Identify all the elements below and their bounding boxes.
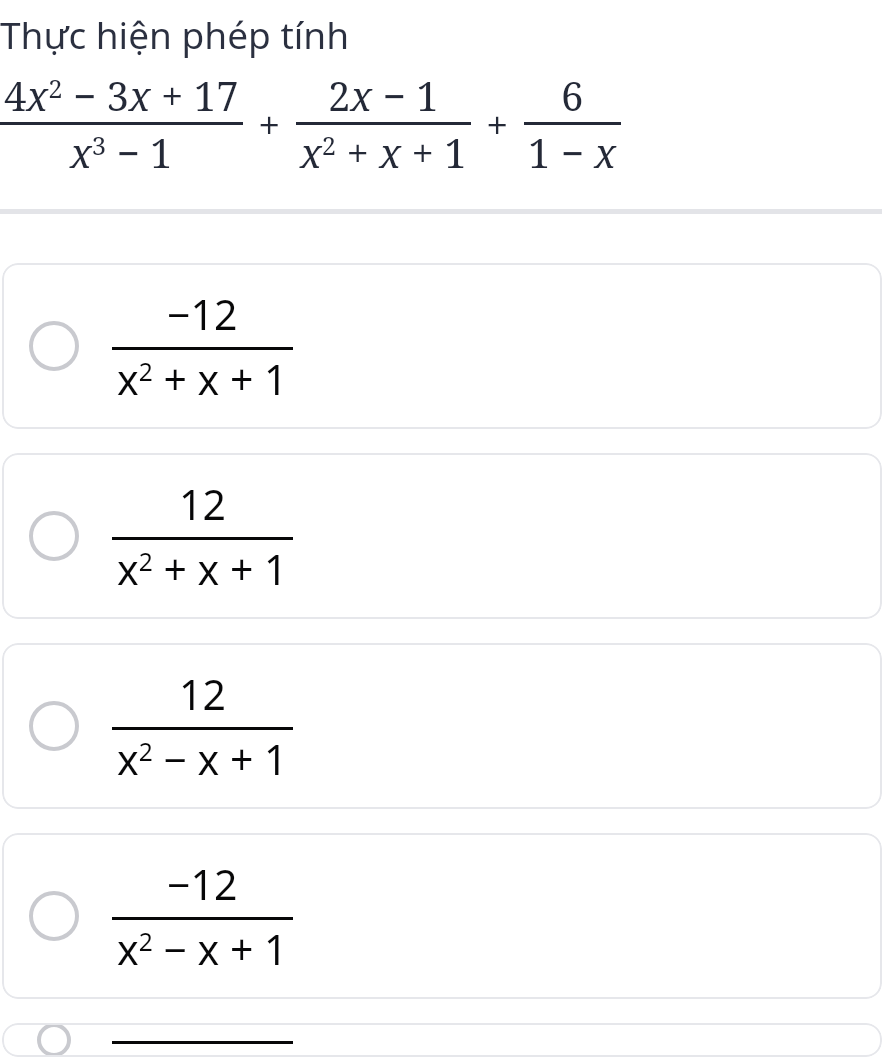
staticText: x2 − x + 1 bbox=[117, 921, 288, 977]
staticText: −12 bbox=[167, 286, 238, 342]
staticText: x2 + x + 1 bbox=[117, 1045, 288, 1057]
staticText: + bbox=[486, 97, 509, 151]
other: Select this answer bbox=[29, 321, 79, 371]
staticText: 12 bbox=[179, 1023, 226, 1036]
staticText: −12 bbox=[167, 856, 238, 912]
staticText: + bbox=[258, 97, 281, 151]
other: Select this answer bbox=[29, 1023, 79, 1057]
other: Select this answer bbox=[29, 701, 79, 751]
button[interactable]: Select this answer bbox=[2, 263, 882, 429]
staticText: 12 bbox=[179, 476, 226, 532]
button[interactable]: Select this answer bbox=[2, 833, 882, 999]
other: Select this answer bbox=[29, 891, 79, 941]
staticText: 1 − x bbox=[528, 125, 617, 179]
staticText: 4x2 − 3x + 17 bbox=[4, 68, 239, 122]
staticText: x2 + x + 1 bbox=[300, 125, 467, 179]
staticText: x2 − x + 1 bbox=[117, 731, 288, 787]
staticText: x2 + x + 1 bbox=[117, 351, 288, 407]
staticText: Thực hiện phép tính bbox=[0, 9, 350, 59]
button[interactable]: Select this answer bbox=[2, 643, 882, 809]
staticText: x3 − 1 bbox=[70, 125, 173, 179]
button[interactable]: Select this answer bbox=[2, 453, 882, 619]
staticText: 2x − 1 bbox=[328, 68, 439, 122]
other: Select this answer bbox=[29, 511, 79, 561]
button[interactable]: Select this answer bbox=[2, 1023, 882, 1057]
staticText: x2 + x + 1 bbox=[117, 541, 288, 597]
staticText: 12 bbox=[179, 666, 226, 722]
staticText: 6 bbox=[561, 68, 584, 122]
